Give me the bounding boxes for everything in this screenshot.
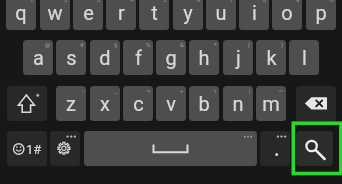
staticText: z <box>66 92 76 115</box>
staticText: 8 <box>263 0 267 3</box>
button[interactable]: c <box>123 86 153 121</box>
staticText: r <box>118 1 125 24</box>
staticText: 3 <box>97 0 101 3</box>
button[interactable]: l <box>289 40 319 75</box>
staticText: y <box>183 1 193 24</box>
button[interactable]: Emoji, numbers and symbols <box>7 131 47 166</box>
staticText: s <box>66 46 77 69</box>
button[interactable] <box>260 131 290 166</box>
button[interactable]: h <box>189 40 219 75</box>
button[interactable]: Shift <box>7 86 47 121</box>
button[interactable]: y <box>173 0 203 30</box>
button[interactable]: w <box>40 0 70 30</box>
staticText: % <box>146 41 151 48</box>
staticText: # <box>80 41 84 48</box>
button[interactable]: i <box>239 0 269 30</box>
staticText: _ <box>115 87 118 94</box>
staticText: j <box>236 46 241 69</box>
staticText: k <box>266 46 277 69</box>
staticText: v <box>166 92 176 115</box>
staticText: a <box>33 46 44 69</box>
button[interactable]: a <box>23 40 53 75</box>
staticText: 6 <box>197 0 201 3</box>
staticText: 1# <box>26 142 42 157</box>
staticText: c <box>133 92 144 115</box>
button[interactable]: s <box>56 40 86 75</box>
button[interactable]: t <box>139 0 169 30</box>
staticText: & <box>180 41 184 48</box>
staticText: ) <box>281 41 284 48</box>
button[interactable]: n <box>223 86 253 121</box>
button[interactable]: q <box>6 0 36 30</box>
button[interactable]: u <box>206 0 236 30</box>
staticText: x <box>100 92 110 115</box>
staticText: b <box>198 92 210 115</box>
button[interactable]: m <box>256 86 286 121</box>
staticText: t <box>151 1 158 24</box>
button[interactable]: o <box>272 0 302 30</box>
staticText: 7 <box>230 0 234 3</box>
staticText: \ <box>214 87 217 94</box>
button[interactable]: k <box>256 40 286 75</box>
staticText: $ <box>114 41 118 48</box>
button[interactable]: b <box>189 86 219 121</box>
button[interactable]: r <box>106 0 136 30</box>
button[interactable]: Space <box>84 131 257 166</box>
staticText: @ <box>45 41 51 48</box>
button[interactable]: e <box>73 0 103 30</box>
staticText: | <box>249 87 251 94</box>
staticText: 9 <box>296 0 300 3</box>
staticText: f <box>135 46 142 69</box>
staticText: h <box>198 46 210 69</box>
staticText: g <box>165 46 177 69</box>
button[interactable]: f <box>123 40 153 75</box>
staticText: w <box>47 1 63 24</box>
button[interactable]: g <box>156 40 186 75</box>
staticText: p <box>315 1 327 24</box>
button[interactable]: j <box>223 40 253 75</box>
staticText: e <box>83 1 94 24</box>
button[interactable]: Backspace <box>296 86 336 121</box>
button[interactable]: z <box>56 86 86 121</box>
staticText: ( <box>248 41 251 48</box>
staticText: l <box>302 46 307 69</box>
staticText: + <box>180 87 184 94</box>
button[interactable]: x <box>90 86 120 121</box>
button[interactable]: Search <box>296 131 333 166</box>
staticText: 5 <box>163 0 167 3</box>
staticText: - <box>82 87 84 94</box>
staticText: n <box>232 92 244 115</box>
button[interactable]: d <box>90 40 120 75</box>
staticText: q <box>15 1 27 24</box>
staticText: o <box>281 1 293 24</box>
staticText: * <box>214 41 217 48</box>
staticText: m <box>262 92 280 115</box>
staticText: ' <box>315 41 317 48</box>
button[interactable]: p <box>306 0 336 30</box>
staticText: 2 <box>64 0 68 3</box>
staticText: i <box>252 1 257 24</box>
staticText: ~ <box>279 87 284 94</box>
button[interactable]: v <box>156 86 186 121</box>
staticText: 1 <box>30 0 34 3</box>
button[interactable]: Settings <box>50 131 80 166</box>
staticText: d <box>99 46 111 69</box>
staticText: u <box>215 1 227 24</box>
staticText: = <box>147 87 151 94</box>
staticText: 4 <box>130 0 134 3</box>
staticText: 0 <box>330 0 334 3</box>
